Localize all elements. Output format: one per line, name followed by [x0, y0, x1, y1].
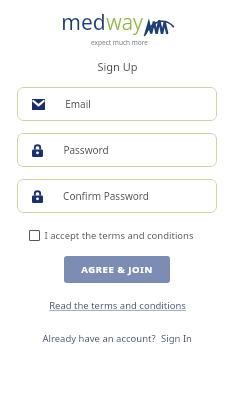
- staticText: Sign In: [161, 332, 192, 345]
- button[interactable]: I accept the terms and conditions: [17, 229, 217, 242]
- staticText: way: [106, 8, 143, 37]
- other: Email: [32, 99, 45, 110]
- button[interactable]: Email: [17, 87, 217, 121]
- staticText: expect much more: [91, 38, 148, 47]
- staticText: med: [61, 8, 106, 37]
- button[interactable]: AGREE & JOIN: [64, 256, 170, 283]
- other: Password: [32, 144, 43, 157]
- button[interactable]: Already have an account?: [36, 330, 198, 347]
- staticText: Email: [65, 97, 91, 111]
- staticText: Sign Up: [97, 59, 138, 74]
- button[interactable]: Password: [17, 179, 217, 213]
- staticText: Password: [63, 143, 109, 157]
- staticText: I accept the terms and conditions: [44, 229, 194, 242]
- other: Medway logo mark: [144, 17, 174, 37]
- button[interactable]: Password: [17, 133, 217, 167]
- other: Password: [32, 190, 43, 203]
- button[interactable]: Read the terms and conditions: [43, 297, 192, 314]
- staticText: Read the terms and conditions: [49, 299, 186, 312]
- staticText: Confirm Password: [63, 189, 149, 203]
- staticText: AGREE & JOIN: [81, 263, 153, 276]
- staticText: Already have an account?: [42, 332, 156, 345]
